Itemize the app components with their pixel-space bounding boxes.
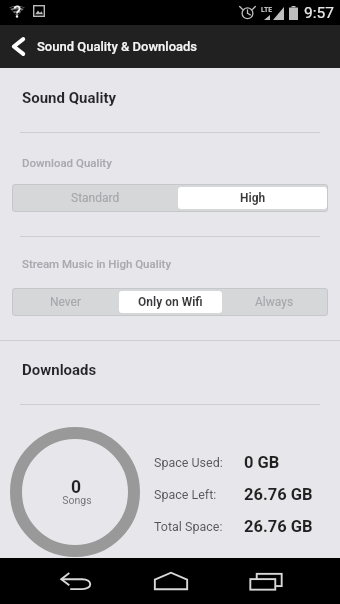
staticText: Standard [71, 191, 120, 205]
button[interactable]: Always [222, 291, 327, 313]
staticText: Sound Quality [22, 89, 117, 107]
staticText: LTE [261, 6, 273, 14]
staticText: Space Used: [154, 455, 223, 470]
staticText: Songs [12, 494, 142, 506]
staticText: 9:57 [304, 4, 334, 22]
staticText: 26.76 GB [244, 517, 313, 536]
staticText: Stream Music in High Quality [22, 257, 172, 270]
staticText: Space Left: [154, 487, 217, 502]
staticText: Only on Wifi [138, 295, 203, 309]
button[interactable]: Home [123, 558, 218, 604]
staticText: Total Space: [154, 519, 223, 534]
staticText: Downloads [22, 361, 97, 379]
staticText: 0 GB [244, 453, 280, 472]
button[interactable]: Navigate up [0, 25, 37, 68]
staticText: Download Quality [22, 156, 112, 169]
staticText: High [240, 191, 266, 205]
button[interactable]: High [178, 187, 327, 209]
button[interactable]: Only on Wifi [119, 291, 222, 313]
staticText: Always [255, 295, 294, 309]
button[interactable]: Never [13, 291, 119, 313]
button[interactable]: Standard [13, 187, 178, 209]
staticText: 0 [11, 477, 141, 498]
staticText: Never [50, 295, 82, 309]
button[interactable]: Back [28, 558, 123, 604]
button[interactable]: Recent apps [218, 558, 313, 604]
staticText: 26.76 GB [244, 485, 313, 504]
staticText: Sound Quality & Downloads [37, 39, 198, 54]
